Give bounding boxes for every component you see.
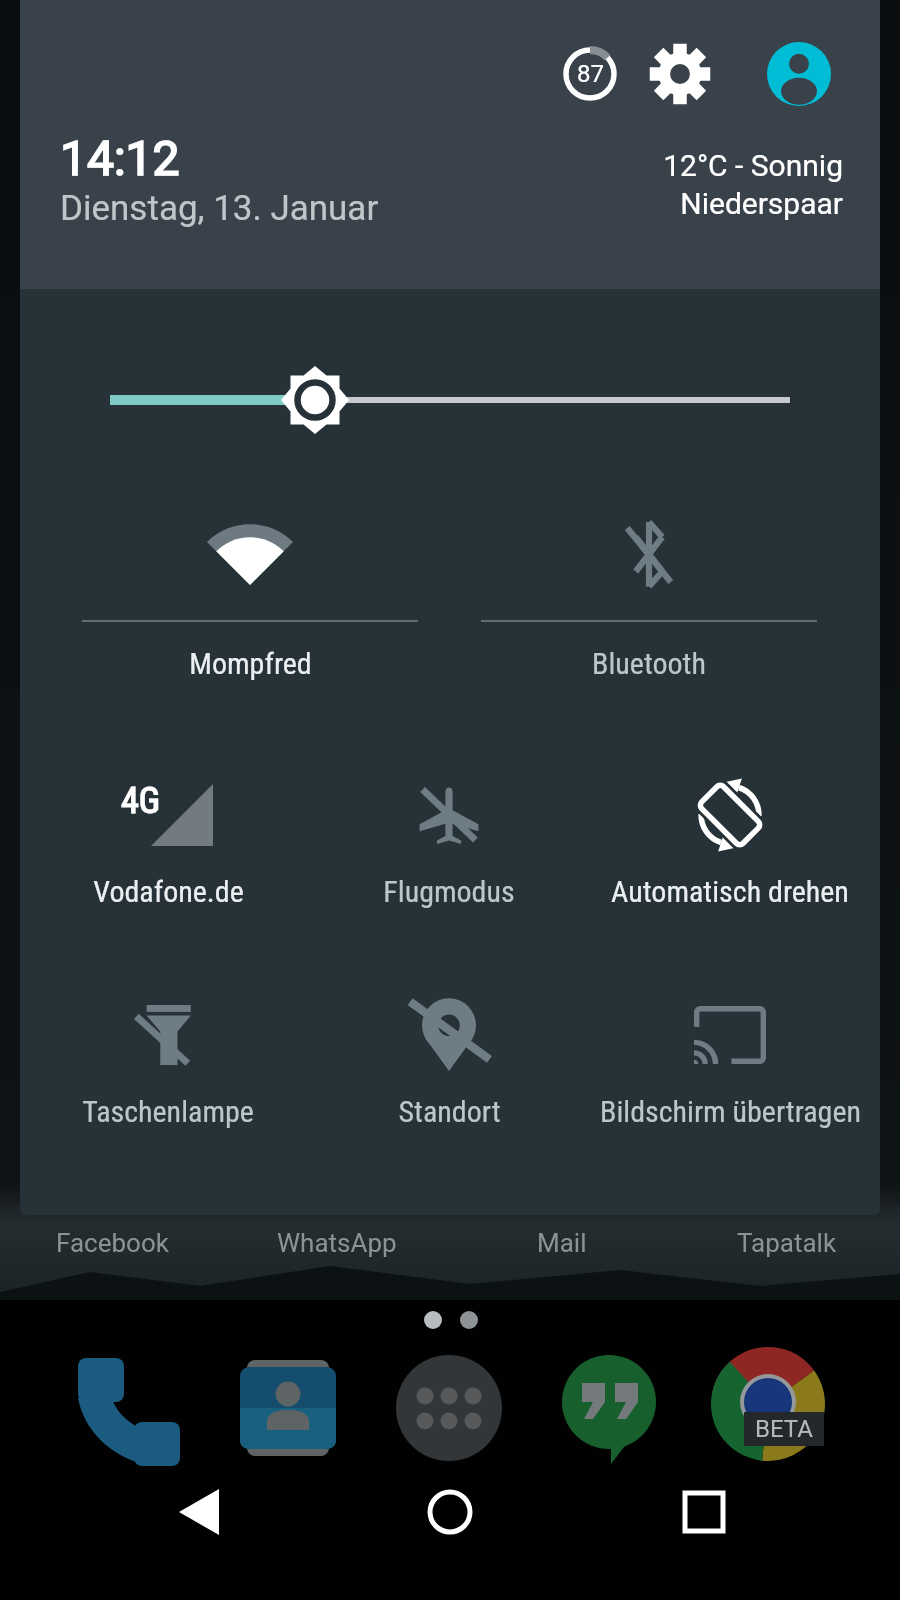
button[interactable]: Bluetooth [519, 489, 779, 690]
staticText: BETA [755, 1415, 813, 1443]
button[interactable]: Tapatalk [675, 1222, 899, 1264]
staticText: WhatsApp [277, 1228, 397, 1258]
button[interactable]: Battery 87 percent [556, 40, 624, 108]
button[interactable]: Back [139, 1462, 259, 1562]
button[interactable]: Bildschirm übertragen [600, 969, 860, 1138]
staticText: Automatisch drehen [611, 874, 849, 909]
staticText: Standort [398, 1094, 501, 1129]
button[interactable]: Standort [319, 969, 579, 1138]
button[interactable]: Phone [68, 1348, 188, 1468]
button[interactable]: Flugmodus [319, 749, 579, 918]
staticText: Tapatalk [737, 1228, 837, 1258]
button[interactable]: WhatsApp [225, 1222, 449, 1264]
button[interactable]: Mail [450, 1222, 674, 1264]
staticText: Niederspaar [680, 186, 843, 221]
staticText: 87 [577, 60, 604, 88]
button[interactable]: Vodafone.de [38, 749, 298, 918]
staticText: 12°C - Sonnig [663, 148, 843, 183]
staticText: Vodafone.de [93, 874, 244, 909]
staticText: Mail [537, 1228, 587, 1258]
button[interactable]: Chrome [708, 1348, 828, 1468]
button[interactable]: Mompfred [120, 489, 380, 690]
button[interactable]: Facebook [0, 1222, 224, 1264]
button[interactable]: 14:12 [60, 130, 379, 229]
staticText: Taschenlampe [82, 1094, 254, 1129]
button[interactable]: Home [390, 1462, 510, 1562]
button[interactable]: Settings [646, 40, 714, 108]
button[interactable]: Automatisch drehen [600, 749, 860, 918]
staticText: Bildschirm übertragen [600, 1094, 861, 1129]
button[interactable]: Apps [389, 1348, 509, 1468]
button[interactable]: Hangouts [549, 1348, 669, 1468]
staticText: 4G [121, 780, 161, 822]
button[interactable]: Contacts [228, 1348, 348, 1468]
button[interactable] [20, 289, 880, 511]
staticText: 14:12 [60, 130, 180, 186]
button[interactable]: Taschenlampe [38, 969, 298, 1138]
button[interactable]: User profile [765, 40, 833, 108]
staticText: Bluetooth [592, 646, 706, 681]
button[interactable]: 12°C - Sonnig [420, 148, 843, 221]
staticText: Flugmodus [383, 874, 515, 909]
staticText: Dienstag, 13. Januar [60, 188, 379, 229]
staticText: Facebook [56, 1228, 169, 1258]
button[interactable]: Recents [644, 1462, 764, 1562]
staticText: Mompfred [189, 646, 312, 681]
